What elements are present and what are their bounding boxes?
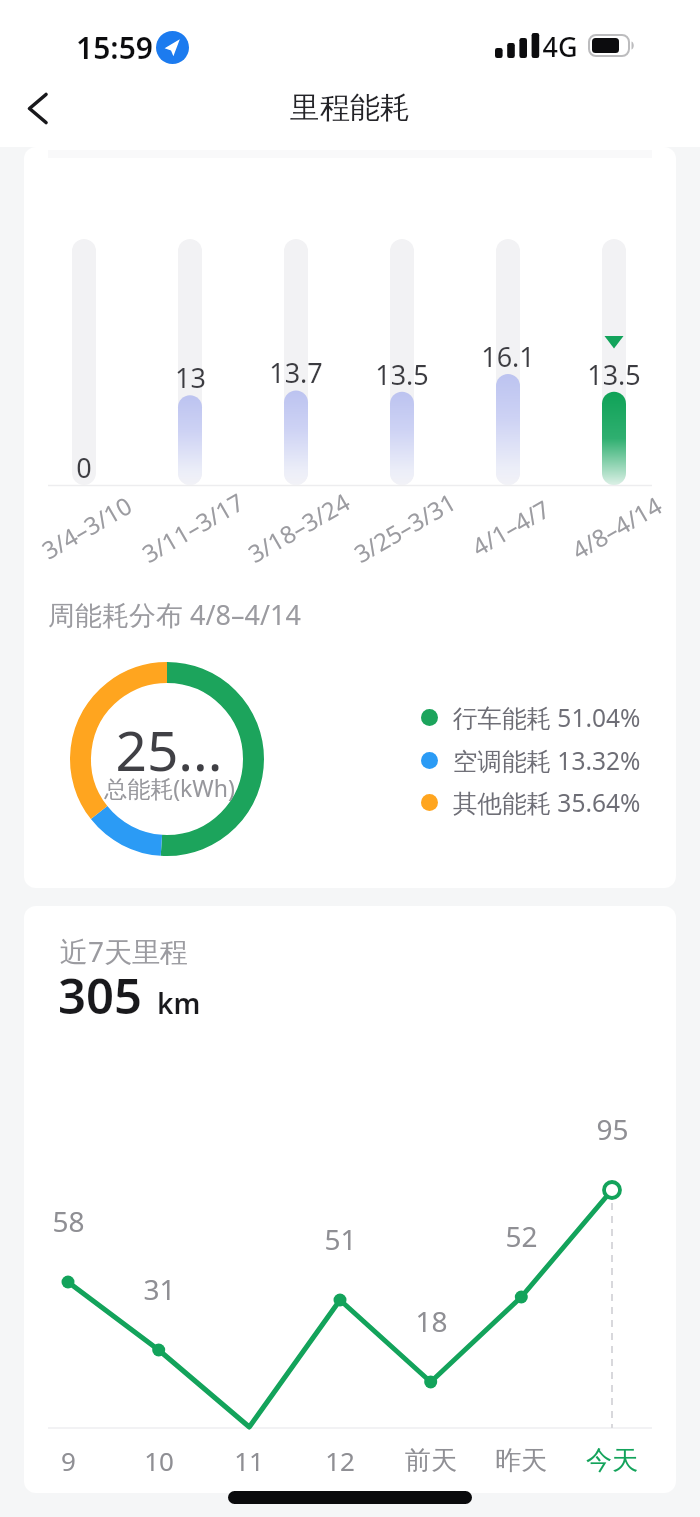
- staticText: 3/25–3/31: [347, 485, 462, 570]
- staticText: 95: [596, 1110, 629, 1148]
- staticText: 昨天: [495, 1444, 547, 1477]
- staticText: 305: [58, 962, 143, 1029]
- staticText: 10: [144, 1443, 174, 1478]
- staticText: 3/11–3/17: [135, 485, 250, 570]
- staticText: 其他能耗 35.64%: [453, 786, 641, 819]
- staticText: 今天: [586, 1444, 638, 1477]
- staticText: 行车能耗 51.04%: [453, 701, 641, 734]
- staticText: 13.5: [375, 356, 429, 393]
- staticText: 4G: [542, 28, 578, 65]
- staticText: 16.1: [481, 338, 535, 375]
- staticText: 0: [76, 449, 92, 486]
- staticText: 里程能耗: [290, 89, 410, 127]
- staticText: 3/18–3/24: [241, 485, 356, 570]
- staticText: 总能耗(kWh): [104, 772, 235, 803]
- button[interactable]: [14, 84, 62, 132]
- staticText: 4/8–4/14: [565, 488, 668, 567]
- staticText: 18: [415, 1302, 448, 1340]
- staticText: 3/4–3/10: [35, 488, 138, 567]
- staticText: 15:59: [76, 27, 153, 68]
- staticText: 13.7: [269, 354, 323, 391]
- staticText: 13: [175, 359, 206, 396]
- staticText: 9: [61, 1443, 76, 1478]
- staticText: 12: [325, 1443, 355, 1478]
- staticText: 空调能耗 13.32%: [453, 744, 641, 777]
- staticText: 52: [505, 1217, 538, 1255]
- staticText: 25...: [115, 712, 223, 774]
- staticText: 4/1–4/7: [465, 492, 555, 563]
- staticText: 周能耗分布 4/8–4/14: [48, 596, 301, 633]
- staticText: 11: [234, 1443, 264, 1478]
- staticText: 58: [52, 1202, 85, 1240]
- staticText: 31: [143, 1270, 176, 1308]
- staticText: 13.5: [587, 356, 641, 393]
- staticText: km: [157, 984, 201, 1022]
- staticText: 51: [324, 1220, 357, 1258]
- staticText: 近7天里程: [60, 932, 189, 970]
- staticText: 前天: [405, 1444, 457, 1477]
